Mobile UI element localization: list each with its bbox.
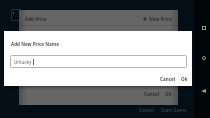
staticText: Add New Price Name [11,41,59,47]
button[interactable]: Cancel [158,74,178,84]
staticText: Add Price [25,16,47,22]
button[interactable]: Cancel [142,89,162,99]
button[interactable]: Ok [163,89,174,99]
button[interactable]: Cancel [137,105,157,115]
button[interactable]: Back [196,83,210,98]
staticText: Unlucky [14,59,32,65]
staticText: New Price [149,16,172,22]
button[interactable]: Recent apps [196,20,210,35]
button[interactable]: Ok [179,74,190,84]
button[interactable]: Home [196,50,210,65]
button[interactable]: New Price [141,14,174,24]
button[interactable]: Start Game [159,105,189,115]
